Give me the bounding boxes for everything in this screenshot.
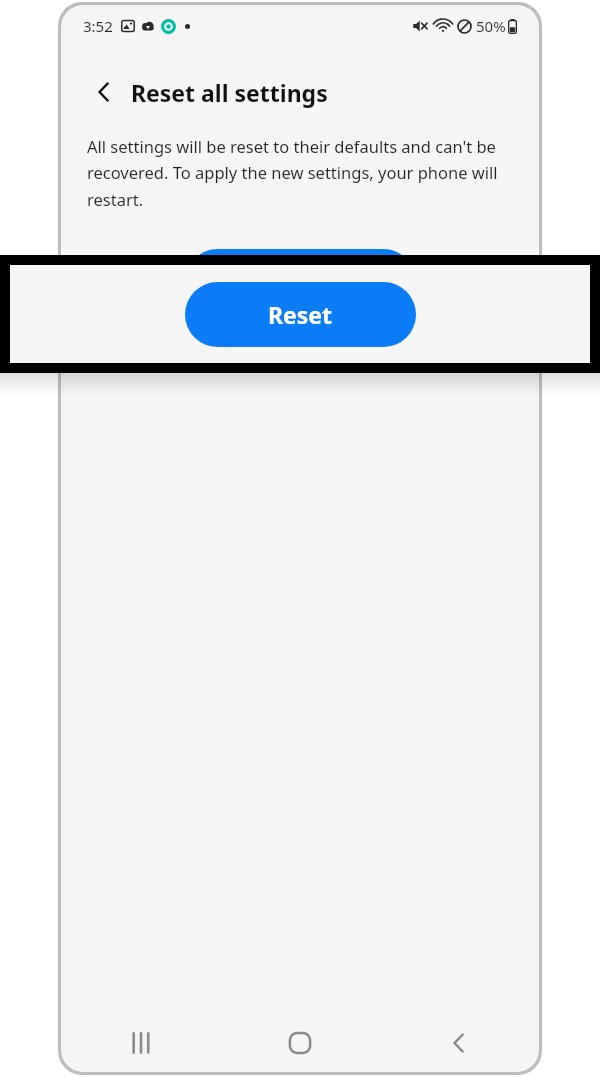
staticText: All settings will be reset to their defa… bbox=[87, 135, 519, 211]
button[interactable]: Reset bbox=[185, 249, 416, 314]
staticText: Reset bbox=[268, 266, 333, 297]
staticText: Reset bbox=[268, 299, 333, 330]
button[interactable]: Recent apps bbox=[113, 1015, 169, 1071]
button[interactable]: Back bbox=[431, 1015, 487, 1071]
staticText: 3:52 bbox=[83, 16, 113, 36]
staticText: 50% bbox=[476, 16, 506, 36]
button[interactable]: Back bbox=[85, 73, 123, 111]
button[interactable]: Reset bbox=[185, 282, 416, 347]
staticText: Reset all settings bbox=[131, 77, 328, 108]
button[interactable]: Home bbox=[272, 1015, 328, 1071]
